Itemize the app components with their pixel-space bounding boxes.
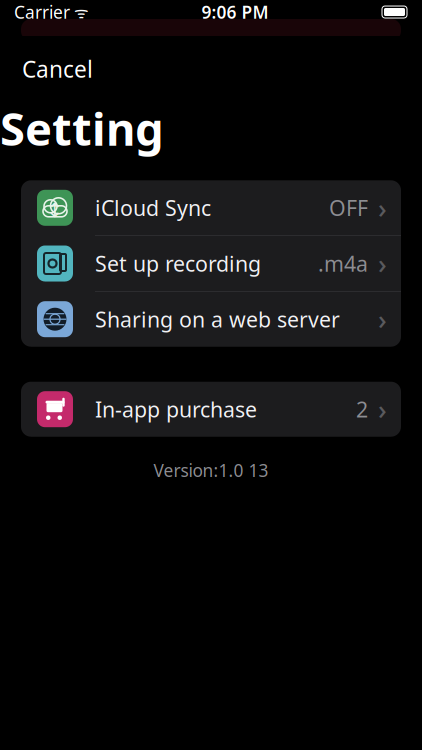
staticText: Cancel — [22, 54, 93, 84]
staticText: ↕ — [46, 199, 63, 222]
staticText: 9:06 PM — [201, 0, 268, 23]
button[interactable]: Cancel — [18, 46, 97, 92]
staticText: Sharing on a web server — [95, 305, 340, 333]
staticText: OFF — [329, 194, 368, 222]
staticText: › — [378, 391, 387, 427]
staticText: › — [378, 190, 387, 225]
button[interactable]: Sharing on a web server — [21, 292, 401, 347]
staticText: 2 — [356, 395, 368, 423]
staticText: Setting — [0, 98, 164, 158]
staticText: Version:1.0 13 — [153, 459, 268, 482]
staticText: .m4a — [318, 249, 368, 278]
staticText: › — [378, 301, 387, 337]
staticText: In-app purchase — [95, 395, 257, 423]
staticText: Set up recording — [95, 249, 261, 278]
staticText: › — [378, 246, 387, 281]
button[interactable]: ↕ — [21, 180, 401, 235]
button[interactable]: In-app purchase — [21, 382, 401, 437]
staticText: Carrier — [14, 0, 70, 23]
staticText: ᯤ — [70, 1, 89, 23]
staticText: iCloud Sync — [95, 194, 211, 222]
button[interactable]: Set up recording — [21, 236, 401, 291]
